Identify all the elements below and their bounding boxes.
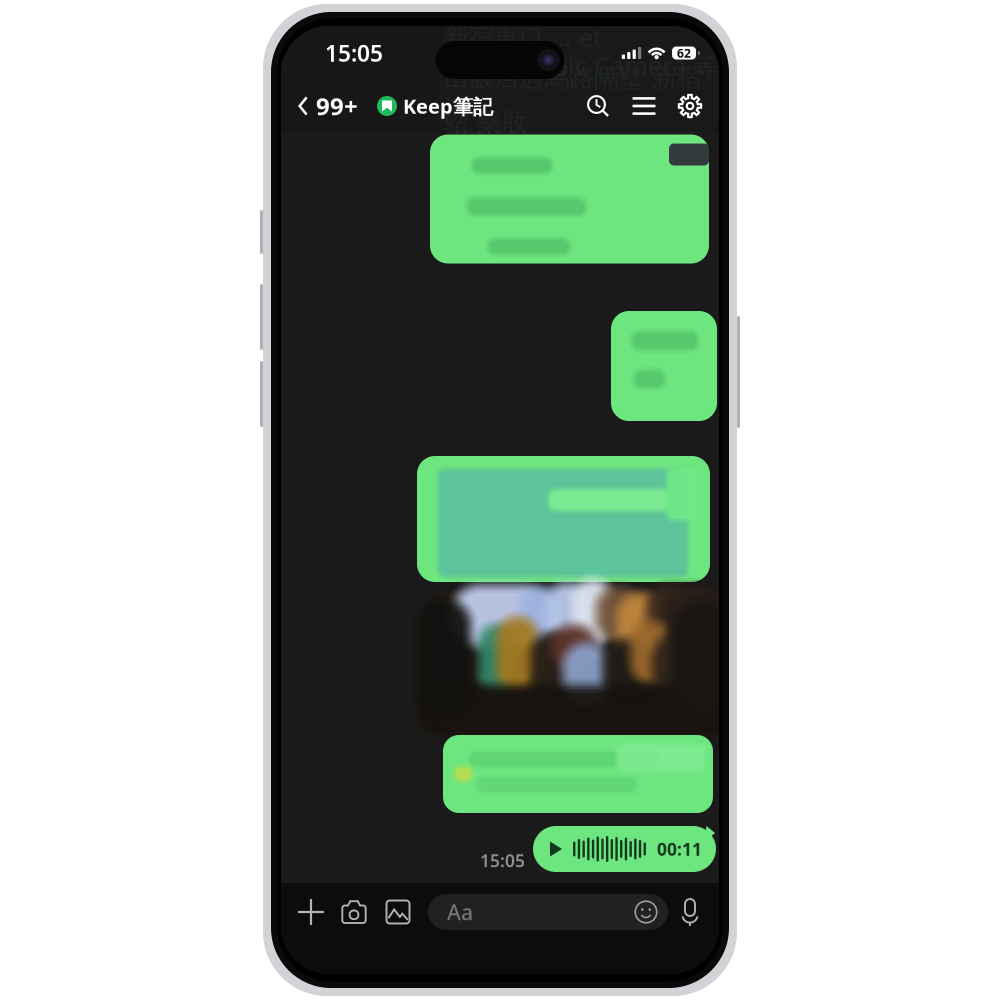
button[interactable]: Keep筆記: [377, 83, 493, 129]
staticText: 同棟隔壁 Bic Camera 等: [444, 49, 718, 82]
staticText: 62: [677, 45, 691, 61]
button[interactable]: Photos: [382, 890, 414, 934]
button[interactable]: Aa: [428, 894, 668, 930]
button[interactable]: Add attachment: [295, 890, 327, 934]
button[interactable]: Camera: [338, 890, 370, 934]
button[interactable]: Play voice message: [533, 826, 716, 872]
staticText: 站 藥妝: [444, 106, 527, 137]
staticText: Aa: [447, 898, 473, 926]
button[interactable]: Menu: [627, 83, 661, 129]
staticText: Keep筆記: [403, 93, 493, 119]
button[interactable]: 99+: [281, 83, 368, 129]
staticText: 15:05: [325, 38, 383, 68]
staticText: 出飯店過馬路隔壁 新宿濱: [444, 62, 702, 125]
staticText: 15:05: [480, 849, 525, 872]
button[interactable]: Voice message: [675, 890, 705, 934]
staticText: 99+: [316, 90, 358, 122]
staticText: 新宿東口 ... et: [444, 20, 602, 54]
staticText: 00:11: [657, 837, 702, 860]
button[interactable]: Search: [581, 83, 615, 129]
button[interactable]: Settings: [673, 83, 707, 129]
